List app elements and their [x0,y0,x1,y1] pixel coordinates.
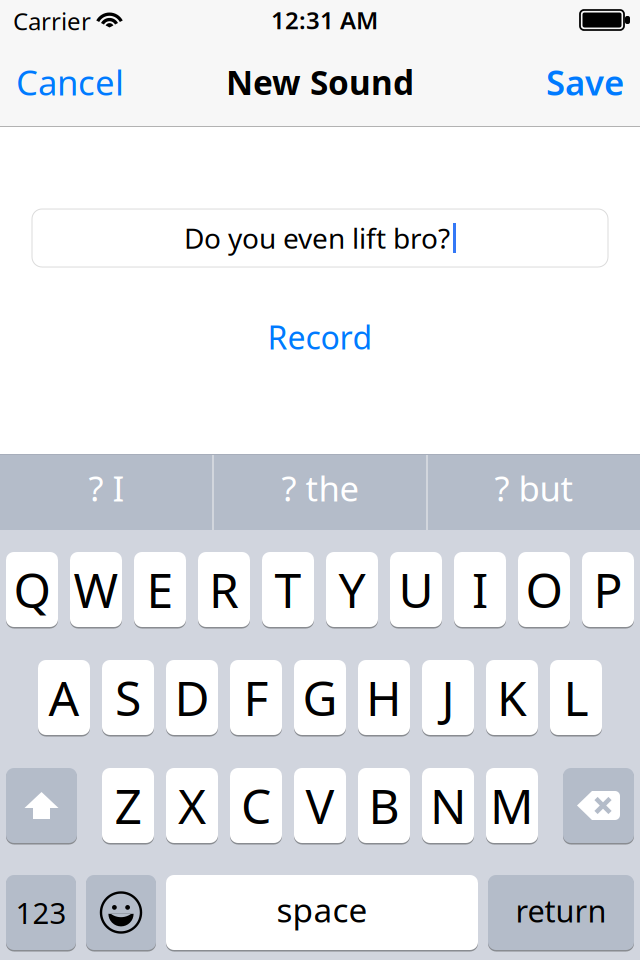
staticText: S [115,666,141,729]
button[interactable]: Y [326,552,378,627]
button[interactable]: Emoji [86,875,156,950]
button[interactable]: M [486,768,538,843]
button[interactable]: Delete [563,768,634,843]
button[interactable]: J [422,660,474,735]
staticText: Z [114,774,141,837]
staticText: J [441,666,454,729]
staticText: Cancel [16,59,124,105]
button[interactable]: R [198,552,250,627]
staticText: Save [546,59,624,105]
button[interactable]: A [38,660,90,735]
staticText: Record [267,316,372,358]
button[interactable]: return [488,875,634,950]
button[interactable]: L [550,660,602,735]
staticText: G [302,666,337,729]
button[interactable]: F [230,660,282,735]
staticText: U [398,558,433,621]
staticText: A [48,666,79,729]
button[interactable]: ? but [428,450,640,526]
button[interactable]: N [422,768,474,843]
button[interactable]: O [518,552,570,627]
staticText: B [368,774,399,837]
staticText: D [174,666,209,729]
staticText: F [243,666,268,729]
button[interactable]: Save [524,58,624,106]
button[interactable]: Record [220,315,420,359]
button[interactable]: W [70,552,122,627]
staticText: Q [13,558,50,621]
button[interactable]: D [166,660,218,735]
button[interactable]: I [454,552,506,627]
staticText: N [430,774,466,837]
staticText: X [178,774,206,837]
staticText: space [276,887,367,932]
button[interactable]: B [358,768,410,843]
staticText: P [593,558,622,621]
button[interactable]: Shift [6,768,77,843]
button[interactable]: X [166,768,218,843]
staticText: Do you even lift bro? [184,219,450,257]
staticText: M [490,774,534,837]
staticText: Y [338,558,365,621]
button[interactable]: P [582,552,634,627]
button[interactable]: E [134,552,186,627]
staticText: New Sound [226,60,414,104]
button[interactable]: U [390,552,442,627]
button[interactable]: H [358,660,410,735]
button[interactable]: Q [6,552,58,627]
button[interactable]: C [230,768,282,843]
staticText: Carrier [13,5,91,37]
staticText: O [525,558,562,621]
button[interactable]: ? I [0,450,213,526]
button[interactable]: 123 [6,875,76,950]
staticText: T [274,558,301,621]
staticText: ? but [494,465,573,511]
staticText: R [209,558,239,621]
button[interactable]: space [166,875,478,950]
staticText: 123 [15,893,66,932]
button[interactable]: K [486,660,538,735]
staticText: ? the [281,465,359,511]
staticText: 12:31 AM [271,4,378,36]
staticText: C [241,774,271,837]
staticText: return [515,890,606,931]
button[interactable]: G [294,660,346,735]
button[interactable]: S [102,660,154,735]
staticText: W [73,558,118,621]
staticText: ? I [88,465,124,511]
staticText: I [472,558,488,621]
button[interactable]: Z [102,768,154,843]
staticText: K [497,666,527,729]
button[interactable]: V [294,768,346,843]
staticText: E [146,558,173,621]
button[interactable]: Do you even lift bro? [32,209,608,267]
button[interactable]: ? the [214,450,427,526]
staticText: L [563,666,588,729]
staticText: H [366,666,402,729]
staticText: V [305,774,334,837]
button[interactable]: T [262,552,314,627]
button[interactable]: Cancel [16,58,136,106]
